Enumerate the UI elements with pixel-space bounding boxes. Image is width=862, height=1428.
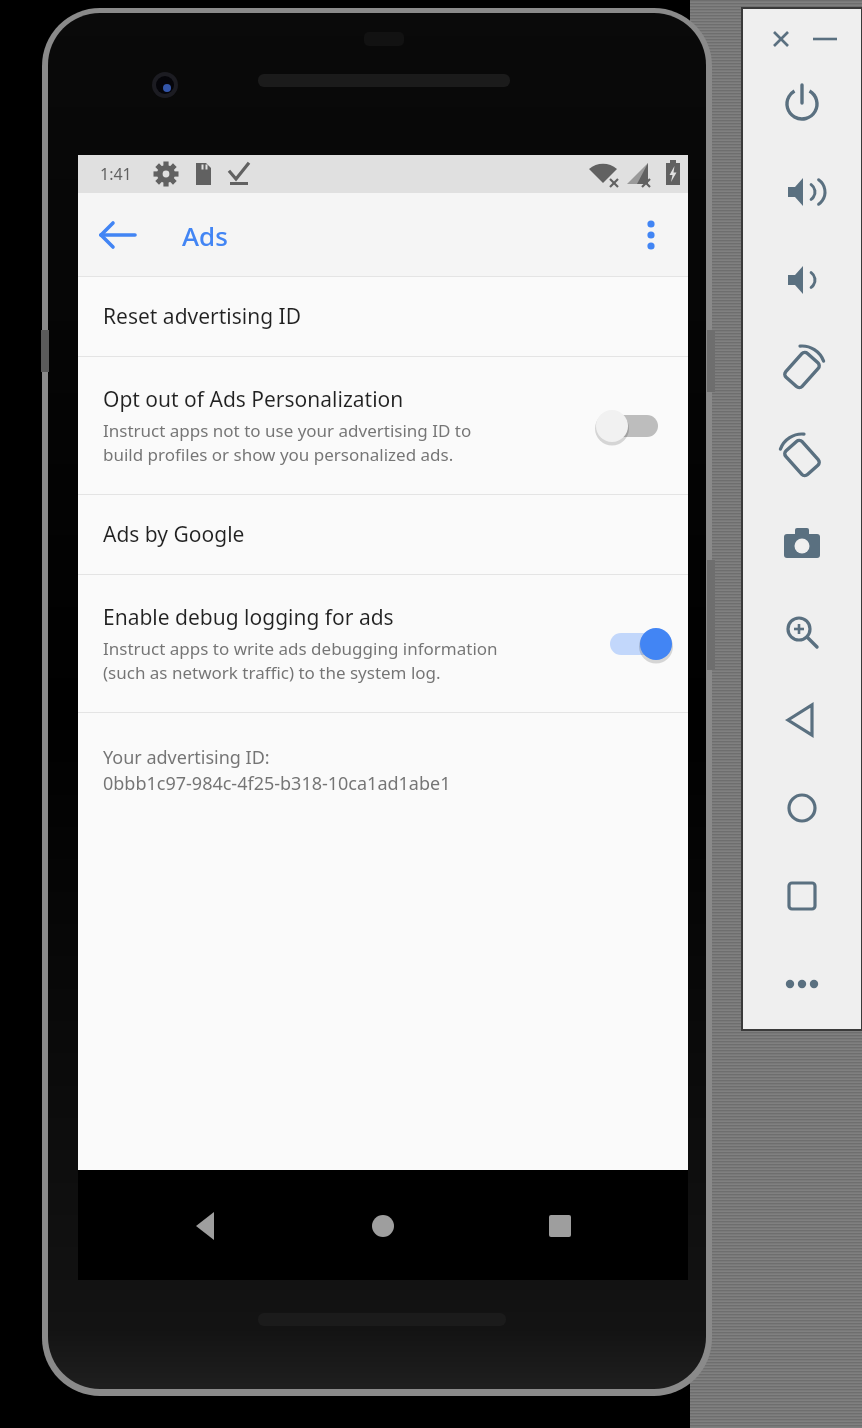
staticText: Reset advertising ID (103, 302, 302, 331)
staticText: Your advertising ID: 0bbb1c97-984c-4f25-… (103, 745, 451, 795)
staticText: 1:41 (100, 163, 132, 185)
button[interactable]: Zoom (776, 606, 828, 658)
staticText: Enable debug logging for ads (103, 603, 394, 632)
button[interactable]: Back (776, 694, 828, 746)
button[interactable]: Overview (776, 870, 828, 922)
button[interactable]: Volume up (776, 166, 828, 218)
button[interactable]: More (776, 958, 828, 1010)
button[interactable]: Home (776, 782, 828, 834)
button[interactable]: Power (776, 78, 828, 130)
button[interactable]: Rotate right (776, 430, 828, 482)
button[interactable]: Minimize (808, 22, 842, 56)
staticText: Ads (182, 218, 228, 253)
staticText: Instruct apps to write ads debugging inf… (103, 637, 498, 684)
button[interactable]: Recent apps (536, 1202, 584, 1250)
staticText: Ads by Google (103, 520, 245, 549)
button[interactable]: Home (359, 1202, 407, 1250)
button[interactable]: Enable debug logging for ads (78, 575, 688, 712)
button[interactable]: Ads by Google (78, 495, 688, 574)
staticText: Opt out of Ads Personalization (103, 385, 404, 414)
button[interactable]: Navigate up (86, 203, 150, 267)
staticText: Instruct apps not to use your advertisin… (103, 419, 472, 466)
button[interactable]: Back (182, 1202, 230, 1250)
button[interactable]: Reset advertising ID (78, 277, 688, 356)
button[interactable]: Opt out of Ads Personalization (78, 357, 688, 494)
button[interactable]: Take screenshot (776, 518, 828, 570)
button[interactable]: Close (764, 22, 798, 56)
button[interactable]: Rotate left (776, 342, 828, 394)
button[interactable]: Volume down (776, 254, 828, 306)
button[interactable]: More options (622, 206, 680, 264)
